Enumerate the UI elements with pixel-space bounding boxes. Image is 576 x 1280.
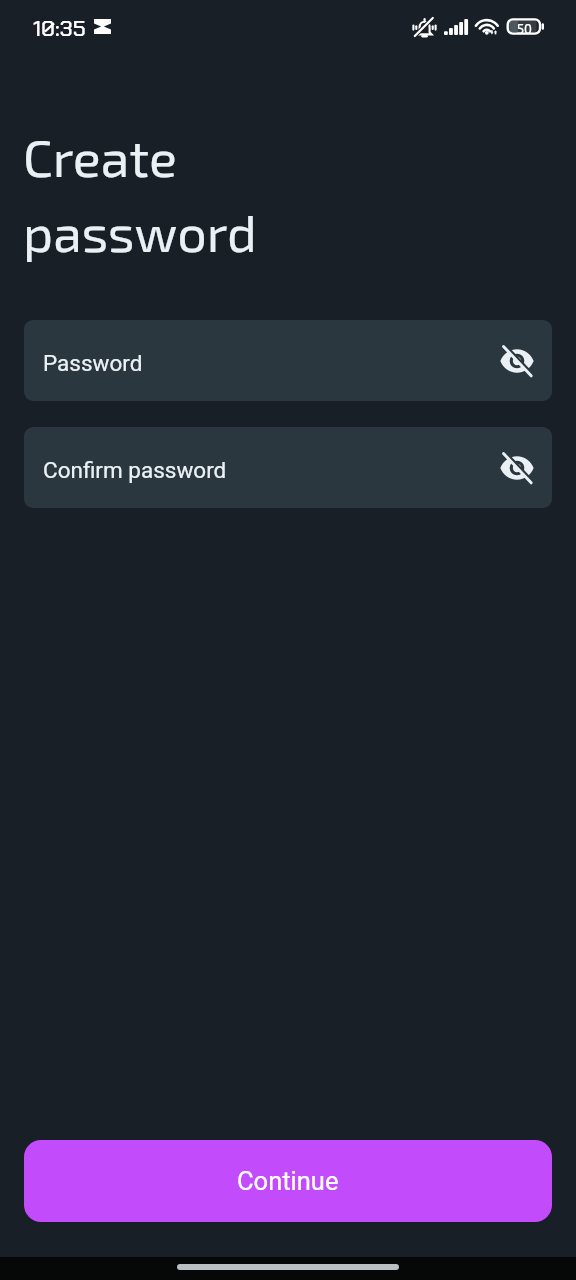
- staticText: 50: [517, 21, 532, 37]
- button[interactable]: Show password: [494, 338, 540, 384]
- staticText: 10:35: [33, 14, 86, 43]
- button[interactable]: Password: [24, 320, 552, 401]
- button[interactable]: Confirm password: [24, 427, 552, 508]
- staticText: Password: [43, 350, 143, 376]
- staticText: Continue: [237, 1166, 339, 1196]
- button[interactable]: Show password: [494, 445, 540, 491]
- button[interactable]: Continue: [24, 1140, 552, 1222]
- staticText: Confirm password: [43, 457, 227, 483]
- staticText: Create password: [23, 125, 257, 263]
